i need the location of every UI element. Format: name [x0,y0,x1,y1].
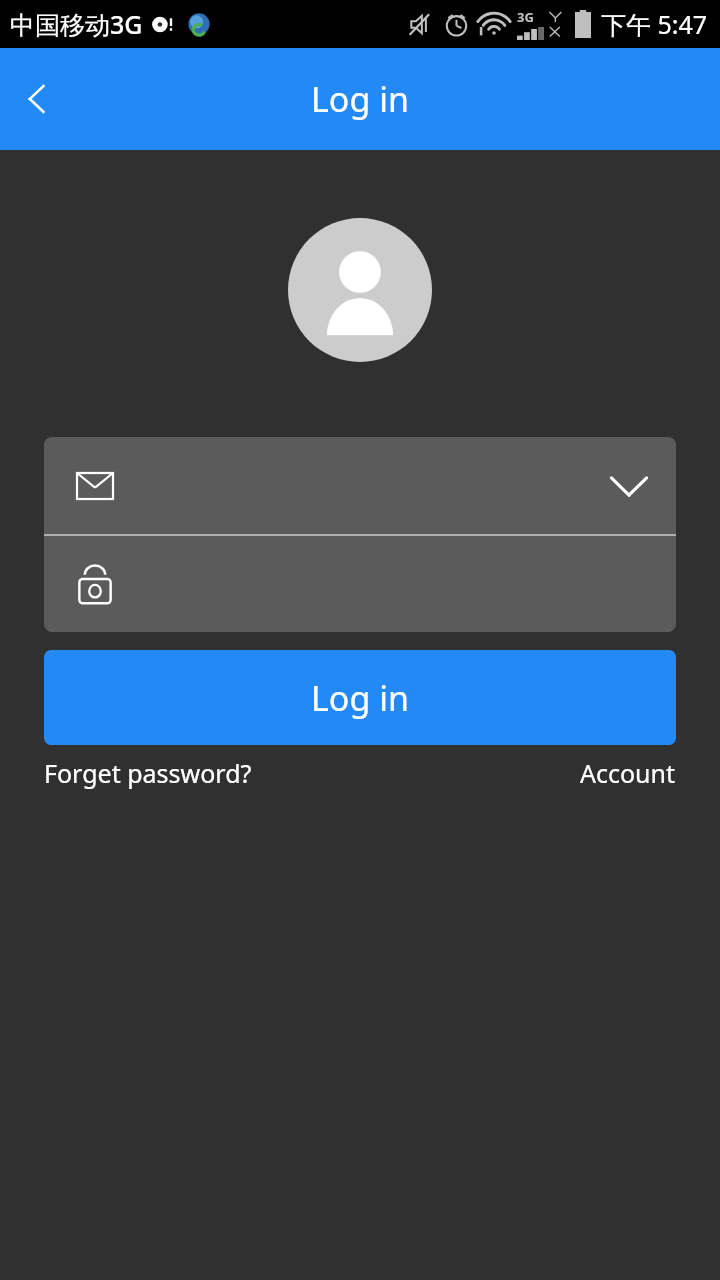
staticText: 中国移动3G [10,7,143,41]
staticText: Forget password? [44,756,252,790]
button[interactable]: Log in [44,650,676,745]
button[interactable]: Forget password? [44,756,252,790]
staticText: 下午 5:47 [601,7,708,41]
button[interactable]: Account [580,756,676,790]
staticText: 3G [517,8,534,26]
button[interactable]: Back [0,61,76,137]
button[interactable]: Show accounts [44,437,676,534]
staticText: Account [580,756,676,790]
button[interactable] [44,536,676,632]
staticText: Log in [311,675,409,721]
staticText: Log in [311,76,409,122]
button[interactable]: Show accounts [592,449,666,523]
